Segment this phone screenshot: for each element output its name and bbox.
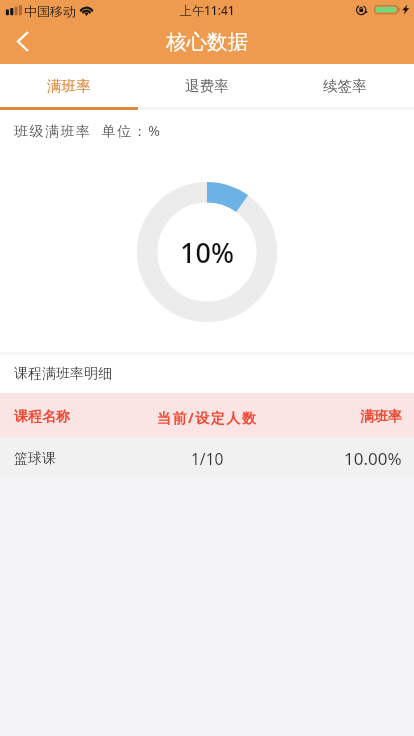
- staticText: 核心数据: [166, 29, 248, 55]
- staticText: 1/10: [191, 448, 224, 469]
- button[interactable]: 满班率: [0, 64, 138, 107]
- button[interactable]: 课程名称: [0, 393, 414, 437]
- button[interactable]: Back: [0, 20, 46, 64]
- staticText: 班级满班率 单位：%: [14, 121, 162, 140]
- staticText: 续签率: [323, 77, 367, 95]
- staticText: 篮球课: [14, 450, 56, 468]
- button[interactable]: 续签率: [276, 64, 414, 107]
- staticText: 课程名称: [14, 408, 70, 426]
- staticText: 10%: [180, 234, 234, 271]
- staticText: 上午11:41: [180, 2, 235, 18]
- staticText: 中国移动: [24, 3, 76, 19]
- staticText: 当前/设定人数: [157, 408, 258, 427]
- staticText: 课程满班率明细: [14, 365, 112, 383]
- staticText: 满班率: [47, 77, 91, 95]
- staticText: 10.00%: [344, 447, 402, 470]
- button[interactable]: 篮球课: [0, 437, 414, 478]
- staticText: 退费率: [185, 77, 229, 95]
- button[interactable]: 退费率: [138, 64, 276, 107]
- staticText: 满班率: [360, 408, 402, 426]
